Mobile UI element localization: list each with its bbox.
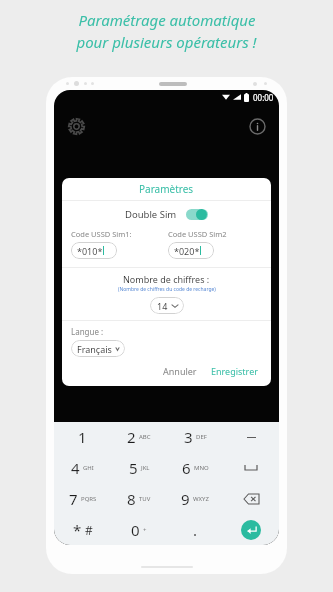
staticText: pour plusieurs opérateurs ! <box>76 32 257 52</box>
button[interactable]: Space <box>223 452 279 483</box>
button[interactable]: *020* <box>168 242 214 259</box>
button[interactable]: Dash <box>223 422 279 452</box>
staticText: Langue : <box>71 326 104 337</box>
button[interactable]: Enregistrer <box>206 363 263 379</box>
staticText: MNO <box>194 464 209 472</box>
staticText: Enregistrer <box>211 365 258 377</box>
staticText: TUV <box>139 495 151 503</box>
staticText: 7 <box>69 489 78 509</box>
button[interactable]: 3DEF <box>167 422 223 452</box>
staticText: Code USSD Sim1: <box>71 229 132 239</box>
staticText: DEF <box>196 433 207 441</box>
staticText: 5 <box>129 458 138 478</box>
staticText: (Nombre de chiffres du code de recharge) <box>118 286 216 293</box>
staticText: Paramètres <box>139 182 194 196</box>
staticText: Paramétrage automatique <box>78 10 256 30</box>
staticText: 6 <box>182 458 191 478</box>
button[interactable]: 7PQRS <box>54 483 111 514</box>
staticText: JKL <box>141 464 150 472</box>
button[interactable]: 8TUV <box>111 483 167 514</box>
staticText: *020* <box>174 245 200 257</box>
button[interactable]: 2ABC <box>111 422 167 452</box>
staticText: Annuler <box>163 365 197 377</box>
staticText: 2 <box>127 427 136 447</box>
button[interactable]: 9WXYZ <box>167 483 223 514</box>
staticText: * <box>73 520 82 540</box>
button[interactable]: 1 <box>54 422 111 452</box>
staticText: 00:00 <box>253 92 274 103</box>
staticText: GHI <box>83 464 94 472</box>
staticText: 0 <box>131 520 140 540</box>
staticText: Nombre de chiffres : <box>123 273 210 285</box>
staticText: PQRS <box>81 495 97 503</box>
staticText: # <box>85 522 93 538</box>
button[interactable]: Info <box>244 113 270 139</box>
staticText: + <box>143 526 147 534</box>
button[interactable]: *010* <box>71 242 117 259</box>
staticText: 8 <box>127 489 136 509</box>
button[interactable]: Français <box>71 340 125 357</box>
staticText: . <box>193 520 198 540</box>
staticText: 9 <box>181 489 190 509</box>
staticText: Code USSD Sim2 <box>168 229 227 239</box>
staticText: 3 <box>184 427 193 447</box>
staticText: 14 <box>157 300 168 312</box>
button[interactable]: . <box>167 514 223 545</box>
button[interactable]: 5JKL <box>111 452 167 483</box>
staticText: 1 <box>78 427 87 447</box>
staticText: WXYZ <box>193 495 209 503</box>
button[interactable]: Double Sim toggle <box>186 209 208 220</box>
button[interactable]: 6MNO <box>167 452 223 483</box>
staticText: ABC <box>139 433 151 441</box>
button[interactable]: 0+ <box>111 514 167 545</box>
staticText: Français <box>77 343 112 355</box>
staticText: *010* <box>77 245 103 257</box>
staticText: Double Sim <box>125 208 177 221</box>
button[interactable]: Backspace <box>223 483 279 514</box>
button[interactable]: Annuler <box>158 363 202 379</box>
button[interactable]: Enter <box>223 514 279 545</box>
staticText: 4 <box>71 458 80 478</box>
button[interactable]: Settings <box>63 113 89 139</box>
button[interactable]: 14 <box>150 297 184 314</box>
button[interactable]: *# <box>54 514 111 545</box>
button[interactable]: 4GHI <box>54 452 111 483</box>
